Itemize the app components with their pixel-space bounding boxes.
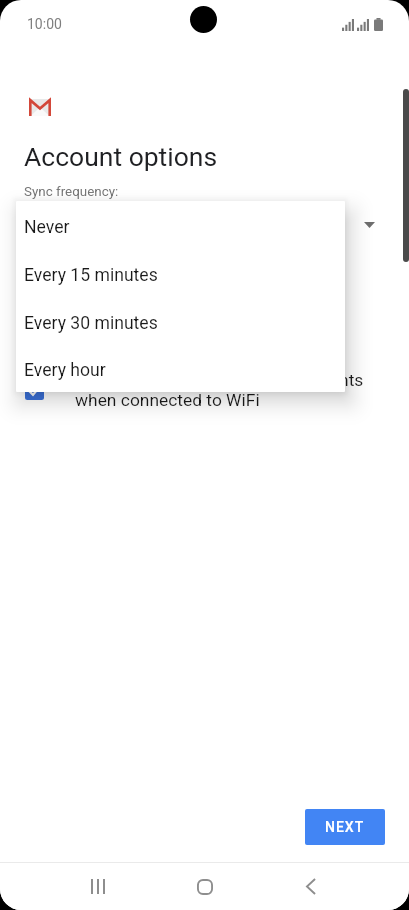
staticText: Automatically download attachments when … — [75, 370, 364, 410]
button[interactable]: Back — [287, 863, 335, 910]
button[interactable]: Never — [16, 201, 345, 249]
button[interactable]: Home — [181, 863, 229, 910]
staticText: Every hour — [24, 360, 106, 381]
button[interactable]: Recent apps — [74, 863, 122, 910]
staticText: Every 15 minutes — [24, 265, 158, 286]
button[interactable]: NEXT — [305, 809, 385, 845]
button[interactable]: Every 30 minutes — [16, 297, 345, 345]
staticText: Sync frequency: — [24, 184, 119, 200]
staticText: NEXT — [325, 819, 365, 835]
staticText: Account options — [24, 141, 218, 172]
staticText: Every 30 minutes — [24, 313, 158, 334]
button[interactable]: Every hour — [16, 345, 345, 392]
staticText: 10:00 — [27, 16, 62, 32]
staticText: Never — [24, 217, 70, 238]
button[interactable]: Automatically download attachments when … — [25, 368, 385, 412]
button[interactable]: Every 15 minutes — [16, 249, 345, 297]
